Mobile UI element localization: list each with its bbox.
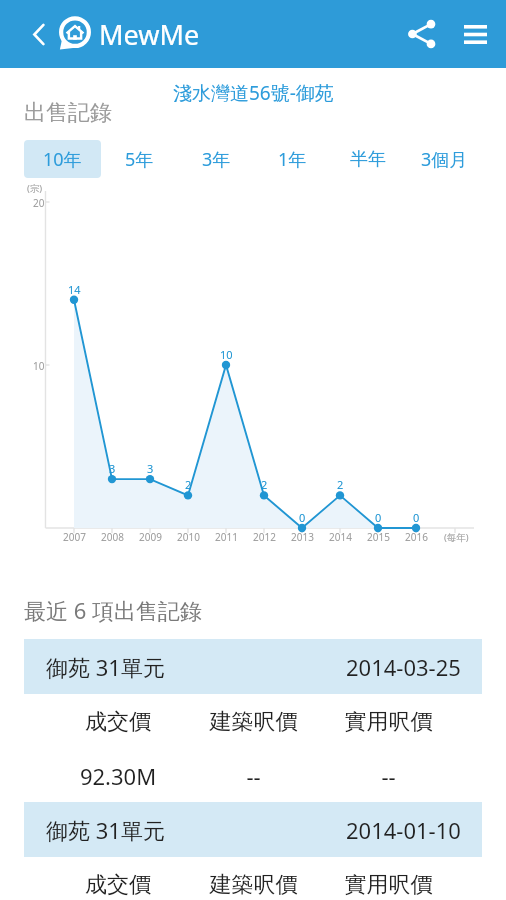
- staticText: --: [321, 761, 456, 791]
- staticText: 半年: [350, 148, 386, 171]
- staticText: 實用呎價: [321, 708, 456, 736]
- staticText: MewMe: [99, 16, 200, 53]
- staticText: 0: [413, 510, 420, 525]
- button[interactable]: 半年: [330, 140, 406, 178]
- staticText: 2011: [215, 530, 238, 544]
- staticText: 2010: [177, 530, 200, 544]
- staticText: 0: [299, 510, 306, 525]
- button[interactable]: 3個月: [406, 140, 482, 178]
- button[interactable]: 御苑 31單元: [0, 802, 506, 900]
- staticText: 2015: [367, 530, 390, 544]
- staticText: 3: [109, 461, 116, 476]
- staticText: 2008: [101, 530, 124, 544]
- button[interactable]: Back: [0, 0, 58, 68]
- staticText: 3: [147, 461, 154, 476]
- staticText: 10: [33, 359, 45, 373]
- staticText: 3個月: [421, 147, 468, 172]
- staticText: 成交價: [50, 871, 186, 899]
- staticText: 2012: [253, 530, 276, 544]
- staticText: 實用呎價: [321, 871, 456, 899]
- staticText: 出售記錄: [24, 99, 112, 127]
- staticText: 10年: [43, 147, 82, 172]
- staticText: --: [186, 761, 321, 791]
- staticText: 御苑 31單元: [46, 815, 165, 845]
- staticText: 成交價: [50, 708, 186, 736]
- staticText: 2014: [329, 530, 352, 544]
- staticText: 淺水灣道56號-御苑: [173, 80, 334, 102]
- staticText: 建築呎價: [186, 871, 321, 899]
- staticText: 御苑 31單元: [46, 652, 165, 682]
- staticText: 10: [220, 347, 233, 362]
- staticText: 14: [68, 282, 81, 297]
- button[interactable]: 3年: [178, 140, 254, 178]
- staticText: 5年: [125, 147, 154, 172]
- button[interactable]: Share: [389, 0, 449, 68]
- staticText: 2: [185, 477, 192, 492]
- staticText: (宗): [27, 182, 43, 195]
- staticText: 2007: [63, 530, 86, 544]
- button[interactable]: Menu: [449, 0, 501, 68]
- staticText: 2: [261, 477, 268, 492]
- staticText: 1年: [278, 147, 307, 172]
- staticText: 2016: [405, 530, 428, 544]
- staticText: 2: [337, 477, 344, 492]
- button[interactable]: 5年: [101, 140, 178, 178]
- staticText: 建築呎價: [186, 708, 321, 736]
- staticText: 最近 6 項出售記錄: [24, 595, 203, 625]
- staticText: 2013: [291, 530, 314, 544]
- button[interactable]: 10年: [24, 140, 101, 178]
- staticText: 92.30M: [50, 761, 186, 791]
- button[interactable]: 淺水灣道56號-御苑: [167, 76, 340, 106]
- staticText: 20: [33, 196, 45, 210]
- staticText: 0: [375, 510, 382, 525]
- staticText: 3年: [202, 147, 231, 172]
- staticText: 2009: [139, 530, 162, 544]
- staticText: (每年): [444, 531, 469, 544]
- button[interactable]: 御苑 31單元: [0, 639, 506, 802]
- staticText: 2014-03-25: [346, 652, 461, 682]
- button[interactable]: 1年: [254, 140, 330, 178]
- staticText: 2014-01-10: [346, 815, 461, 845]
